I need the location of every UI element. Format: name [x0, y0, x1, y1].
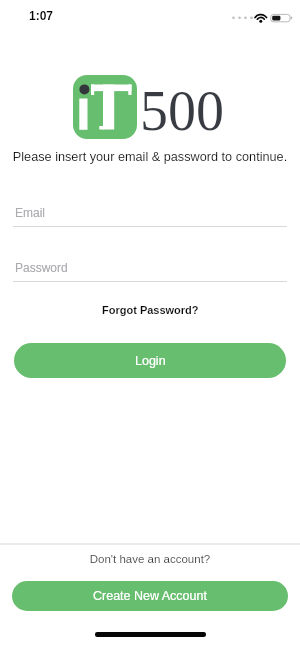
- staticText: Don't have an account?: [0, 553, 300, 566]
- button[interactable]: Forgot Password?: [95, 301, 205, 319]
- staticText: 1:07: [29, 9, 54, 22]
- staticText: Create New Account: [93, 589, 207, 603]
- button[interactable]: Email: [13, 200, 287, 227]
- button[interactable]: Password: [13, 255, 287, 282]
- staticText: Forgot Password?: [102, 304, 199, 316]
- button[interactable]: Login: [14, 343, 286, 378]
- staticText: Password: [15, 261, 68, 274]
- staticText: 500: [140, 80, 224, 142]
- staticText: Login: [135, 354, 166, 368]
- staticText: Email: [15, 206, 46, 219]
- button[interactable]: Create New Account: [12, 581, 288, 611]
- staticText: Please insert your email & password to c…: [0, 150, 300, 164]
